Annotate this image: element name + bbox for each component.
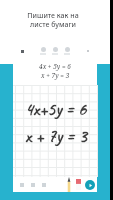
button[interactable]: Eraser	[76, 179, 81, 190]
button[interactable]: Pencil	[67, 177, 71, 192]
button[interactable]: Send	[85, 180, 95, 190]
staticText: 4x + 5y = 6	[39, 62, 71, 71]
staticText: Пишите как на листе бумаги	[0, 11, 106, 29]
button[interactable]: Tool	[50, 47, 60, 55]
staticText: x + 7y = 3	[41, 71, 70, 80]
button[interactable]: Tool	[38, 47, 48, 55]
button[interactable]: Tool	[28, 180, 37, 189]
button[interactable]: Tool	[39, 180, 48, 189]
staticText: 4x+5y = 6	[25, 98, 87, 121]
button[interactable]: Back	[16, 45, 28, 57]
button[interactable]: Tool	[17, 180, 26, 189]
button[interactable]: More options	[82, 45, 94, 57]
staticText: x + 7y = 3	[25, 125, 87, 148]
button[interactable]: Tool	[62, 47, 72, 55]
